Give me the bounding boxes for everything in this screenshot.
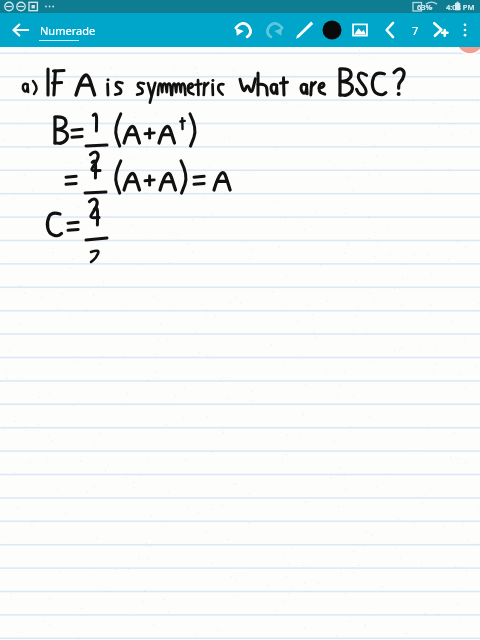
button[interactable]: Share — [428, 18, 452, 42]
staticText: 4:03 PM — [446, 2, 475, 12]
button[interactable]: Numerade — [38, 20, 98, 41]
button[interactable]: Color black — [320, 18, 344, 42]
button[interactable]: 7 — [404, 19, 426, 41]
button[interactable]: Previous page — [378, 18, 402, 42]
staticText: 63% — [417, 2, 432, 12]
button[interactable]: More options — [454, 19, 476, 41]
staticText: 7 — [412, 23, 419, 38]
button[interactable]: Redo — [262, 18, 286, 42]
button[interactable]: Insert image — [348, 18, 372, 42]
button[interactable]: Undo — [232, 18, 256, 42]
button[interactable]: Back — [9, 18, 33, 42]
staticText: Numerade — [40, 23, 96, 38]
button[interactable]: Pen — [292, 18, 316, 42]
